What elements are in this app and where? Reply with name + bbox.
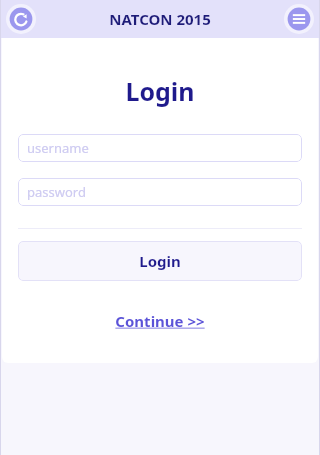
staticText: Continue >>	[115, 311, 205, 331]
button[interactable]: Back	[6, 4, 36, 34]
button[interactable]: password	[18, 178, 302, 206]
staticText: password	[27, 183, 86, 201]
staticText: Login	[125, 74, 195, 108]
staticText: NATCON 2015	[109, 9, 211, 29]
staticText: Login	[139, 251, 181, 271]
button[interactable]: Login	[18, 241, 302, 281]
button[interactable]: Menu	[284, 4, 314, 34]
staticText: username	[27, 139, 89, 157]
button[interactable]: Continue >>	[111, 309, 209, 333]
button[interactable]: username	[18, 134, 302, 162]
